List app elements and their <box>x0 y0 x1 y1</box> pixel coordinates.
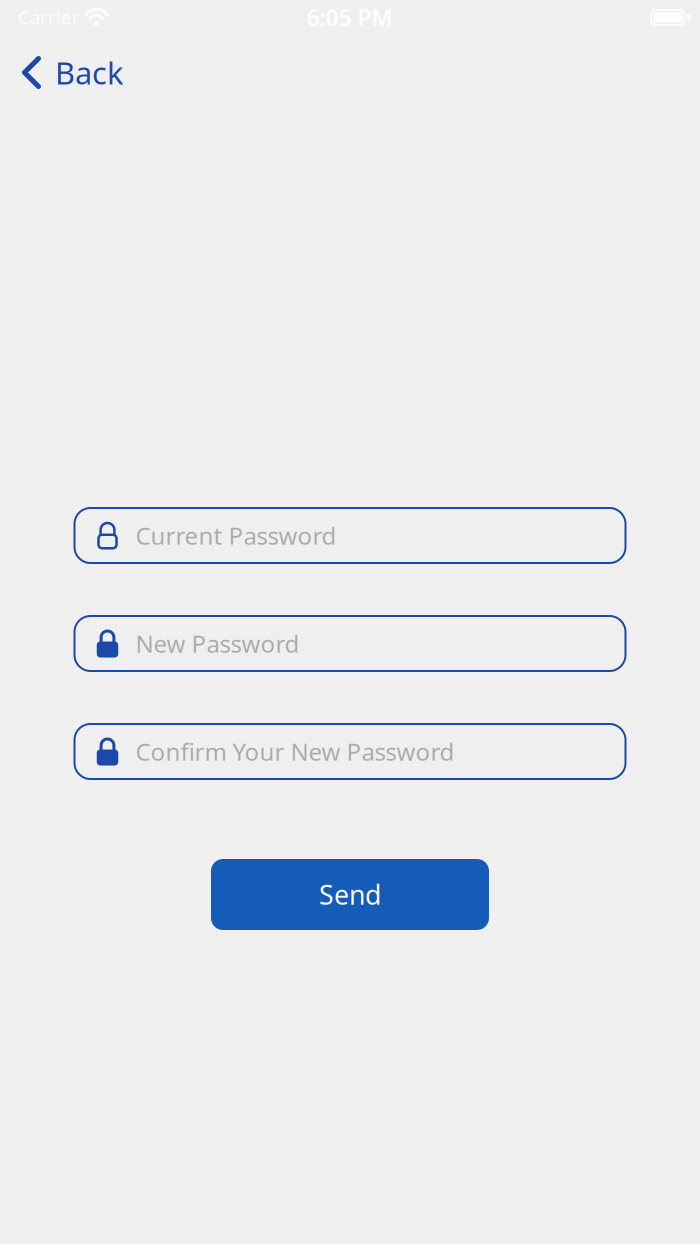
staticText: Current Password <box>135 520 336 551</box>
staticText: 6:05 PM <box>306 2 392 32</box>
button[interactable]: Back <box>0 52 123 93</box>
staticText: Back <box>55 52 123 93</box>
button[interactable]: Send <box>211 859 489 930</box>
staticText: Confirm Your New Password <box>135 736 454 767</box>
staticText: Send <box>319 877 381 912</box>
staticText: New Password <box>135 628 299 659</box>
staticText: Carrier <box>18 5 80 29</box>
button[interactable]: Confirm Your New Password <box>73 723 626 780</box>
button[interactable]: Current Password <box>73 507 626 564</box>
button[interactable]: New Password <box>73 615 626 672</box>
